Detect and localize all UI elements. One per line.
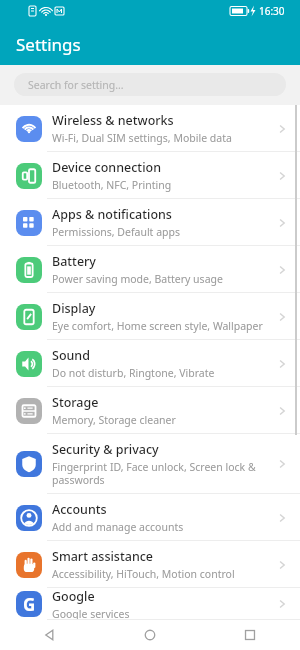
- button[interactable]: Wireless & networks: [0, 105, 300, 152]
- staticText: Battery: [52, 253, 96, 270]
- button[interactable]: Display: [0, 293, 300, 340]
- button[interactable]: Security & privacy: [0, 434, 300, 494]
- button[interactable]: Apps & notifications: [0, 199, 300, 246]
- staticText: Security & privacy: [52, 441, 159, 458]
- staticText: Settings: [16, 33, 81, 56]
- staticText: Do not disturb, Ringtone, Vibrate: [52, 366, 215, 380]
- staticText: Fingerprint ID, Face unlock, Screen lock…: [52, 460, 256, 487]
- staticText: 16:30: [259, 4, 285, 18]
- staticText: Bluetooth, NFC, Printing: [52, 178, 172, 192]
- button[interactable]: Back: [0, 620, 100, 650]
- staticText: Eye comfort, Home screen style, Wallpape…: [52, 319, 263, 333]
- button[interactable]: Device connection: [0, 152, 300, 199]
- staticText: Accessibility, HiTouch, Motion control: [52, 567, 235, 581]
- button[interactable]: Accounts: [0, 494, 300, 541]
- button[interactable]: Battery: [0, 246, 300, 293]
- staticText: Display: [52, 300, 96, 317]
- staticText: G: [23, 593, 36, 616]
- button[interactable]: Recent apps: [200, 620, 300, 650]
- staticText: Permissions, Default apps: [52, 225, 180, 239]
- button[interactable]: Sound: [0, 340, 300, 387]
- button[interactable]: G: [0, 588, 300, 620]
- button[interactable]: Home: [100, 620, 200, 650]
- staticText: Device connection: [52, 159, 161, 176]
- staticText: Sound: [52, 347, 90, 364]
- staticText: Add and manage accounts: [52, 520, 184, 534]
- button[interactable]: Smart assistance: [0, 541, 300, 588]
- staticText: Wireless & networks: [52, 112, 174, 129]
- staticText: Smart assistance: [52, 548, 154, 565]
- button[interactable]: Search for setting...: [14, 73, 286, 96]
- staticText: Google services: [52, 607, 130, 620]
- staticText: Search for setting...: [28, 78, 124, 92]
- staticText: Storage: [52, 394, 99, 411]
- staticText: Google: [52, 588, 95, 605]
- staticText: Memory, Storage cleaner: [52, 413, 176, 427]
- staticText: Accounts: [52, 501, 107, 518]
- button[interactable]: Storage: [0, 387, 300, 434]
- staticText: Wi-Fi, Dual SIM settings, Mobile data: [52, 131, 232, 145]
- staticText: Apps & notifications: [52, 206, 172, 223]
- staticText: Power saving mode, Battery usage: [52, 272, 223, 286]
